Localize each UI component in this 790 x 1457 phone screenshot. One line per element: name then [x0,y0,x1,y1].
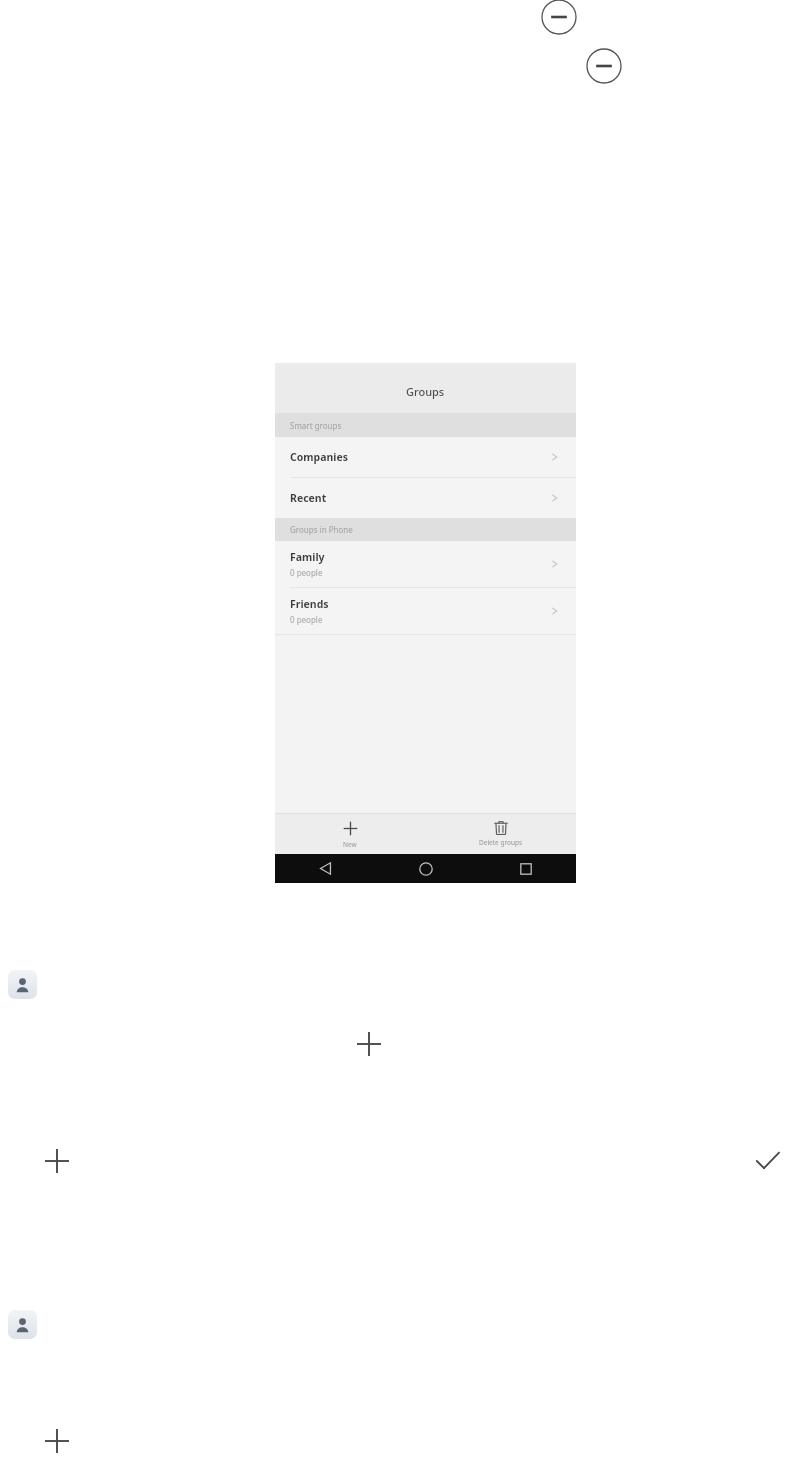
button[interactable]: Home [376,862,476,876]
button[interactable]: Groups [275,369,576,413]
button[interactable]: Friends [275,588,576,634]
staticText: Family [290,550,325,564]
button[interactable]: Recents [476,863,576,875]
staticText: 0 people [290,614,323,625]
staticText: New [343,840,357,849]
staticText: Groups in Phone [290,524,353,535]
button[interactable]: New [275,820,425,849]
staticText: Groups [406,384,445,399]
button[interactable]: Contact [8,970,37,999]
staticText: Companies [290,450,348,464]
button[interactable]: Family [275,541,576,587]
other: Confirm [752,1146,782,1176]
button[interactable]: Collapse [586,48,622,84]
button[interactable]: Back [275,862,376,875]
staticText: Smart groups [290,420,342,431]
staticText: Recent [290,491,327,505]
staticText: 0 people [290,567,323,578]
button[interactable]: Companies [275,437,576,477]
button[interactable]: Contact [8,1310,37,1339]
button[interactable]: Recent [275,478,576,518]
staticText: Delete groups [479,838,523,847]
button[interactable]: Collapse [541,0,577,35]
staticText: Friends [290,597,329,611]
button[interactable]: Delete groups [425,821,576,847]
